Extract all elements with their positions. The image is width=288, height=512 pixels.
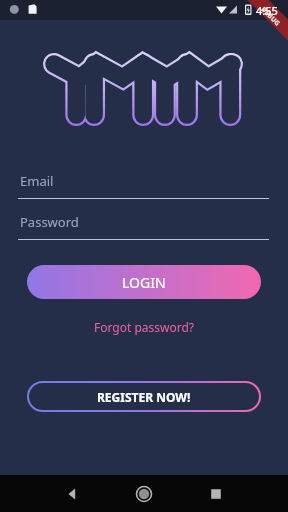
staticText: REGISTER NOW!: [97, 389, 191, 405]
button[interactable]: Password: [18, 213, 269, 240]
staticText: DEBUG: [259, 5, 283, 28]
button[interactable]: REGISTER NOW!: [27, 381, 261, 412]
staticText: 4:55: [256, 3, 278, 18]
button[interactable]: Recent apps: [200, 478, 232, 510]
button[interactable]: LOGIN: [27, 265, 261, 299]
staticText: Password: [20, 213, 79, 231]
button[interactable]: Email: [18, 172, 269, 199]
button[interactable]: Back: [56, 478, 88, 510]
staticText: LOGIN: [122, 273, 166, 292]
staticText: Email: [20, 172, 54, 190]
button[interactable]: Forgot password?: [86, 316, 203, 338]
button[interactable]: Home: [127, 477, 161, 511]
